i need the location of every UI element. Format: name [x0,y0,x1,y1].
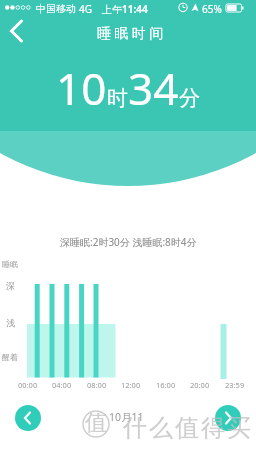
staticText: 23:59 [225,380,245,390]
button[interactable] [2,16,34,46]
staticText: 什么值得买 [122,413,252,443]
staticText: 12:00 [121,380,141,390]
staticText: 65% [202,2,222,16]
button[interactable] [215,405,241,431]
staticText: 睡眠 [2,259,18,269]
staticText: 34 [128,58,179,118]
button[interactable] [15,405,41,431]
staticText: 10月11 [109,410,144,424]
staticText: 00:00 [18,380,38,390]
staticText: 16:00 [156,380,176,390]
staticText: 中国移动 [36,2,76,15]
staticText: 上午11:44 [102,2,148,16]
staticText: 20:00 [190,380,210,390]
staticText: 04:00 [52,380,72,390]
staticText: 分 [179,85,200,111]
staticText: 浅 [6,317,15,328]
staticText: 睡眠时间 [95,25,165,43]
staticText: 深 [6,280,15,291]
staticText: 10 [56,58,107,118]
staticText: 08:00 [87,380,107,390]
staticText: 4G [79,2,92,16]
staticText: 醒着 [2,352,18,362]
staticText: 时 [107,85,128,111]
staticText: 深睡眠:2时30分 浅睡眠:8时4分 [60,235,197,249]
staticText: 值 [85,409,107,437]
